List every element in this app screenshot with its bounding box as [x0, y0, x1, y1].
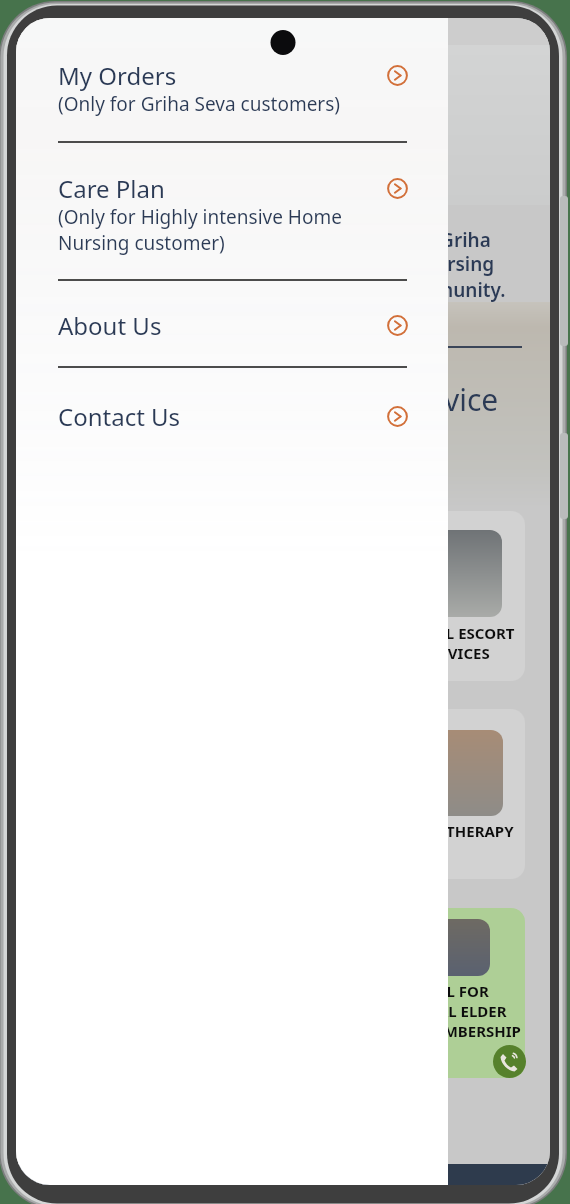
button[interactable]: About Us [16, 309, 448, 353]
staticText: About Us [58, 309, 162, 342]
button[interactable]: PHYSIOTHERAPY [375, 709, 525, 879]
staticText: Care Plan [58, 172, 165, 205]
button[interactable]: Care Plan [16, 172, 448, 268]
staticText: family community. [333, 277, 506, 303]
staticText: SERVICES [421, 643, 490, 663]
button[interactable]: Contact Us [16, 400, 448, 444]
staticText: (Only for Griha Seva customers) [58, 91, 341, 117]
staticText: Our Service [336, 379, 499, 420]
staticText: ENROL FOR [404, 981, 489, 1001]
button[interactable]: My Orders [16, 59, 448, 131]
button[interactable]: ENROL FOR [375, 908, 525, 1078]
button[interactable]: Call [493, 1045, 526, 1078]
staticText: SPECIAL ELDER [396, 1001, 507, 1021]
staticText: Contact Us [58, 400, 181, 433]
staticText: PHYSIOTHERAPY [390, 821, 514, 841]
button[interactable]: MEDICAL ESCORT [375, 511, 525, 681]
staticText: My Orders [58, 59, 177, 92]
staticText: Seva Home Nursing [312, 251, 495, 277]
staticText: Welcome to 'XYZ' Griha [277, 227, 491, 253]
staticText: MEMBERSHIP [421, 1021, 521, 1041]
staticText: MEDICAL ESCORT [386, 623, 515, 643]
staticText: (Only for Highly intensive Home Nursing … [58, 204, 342, 256]
